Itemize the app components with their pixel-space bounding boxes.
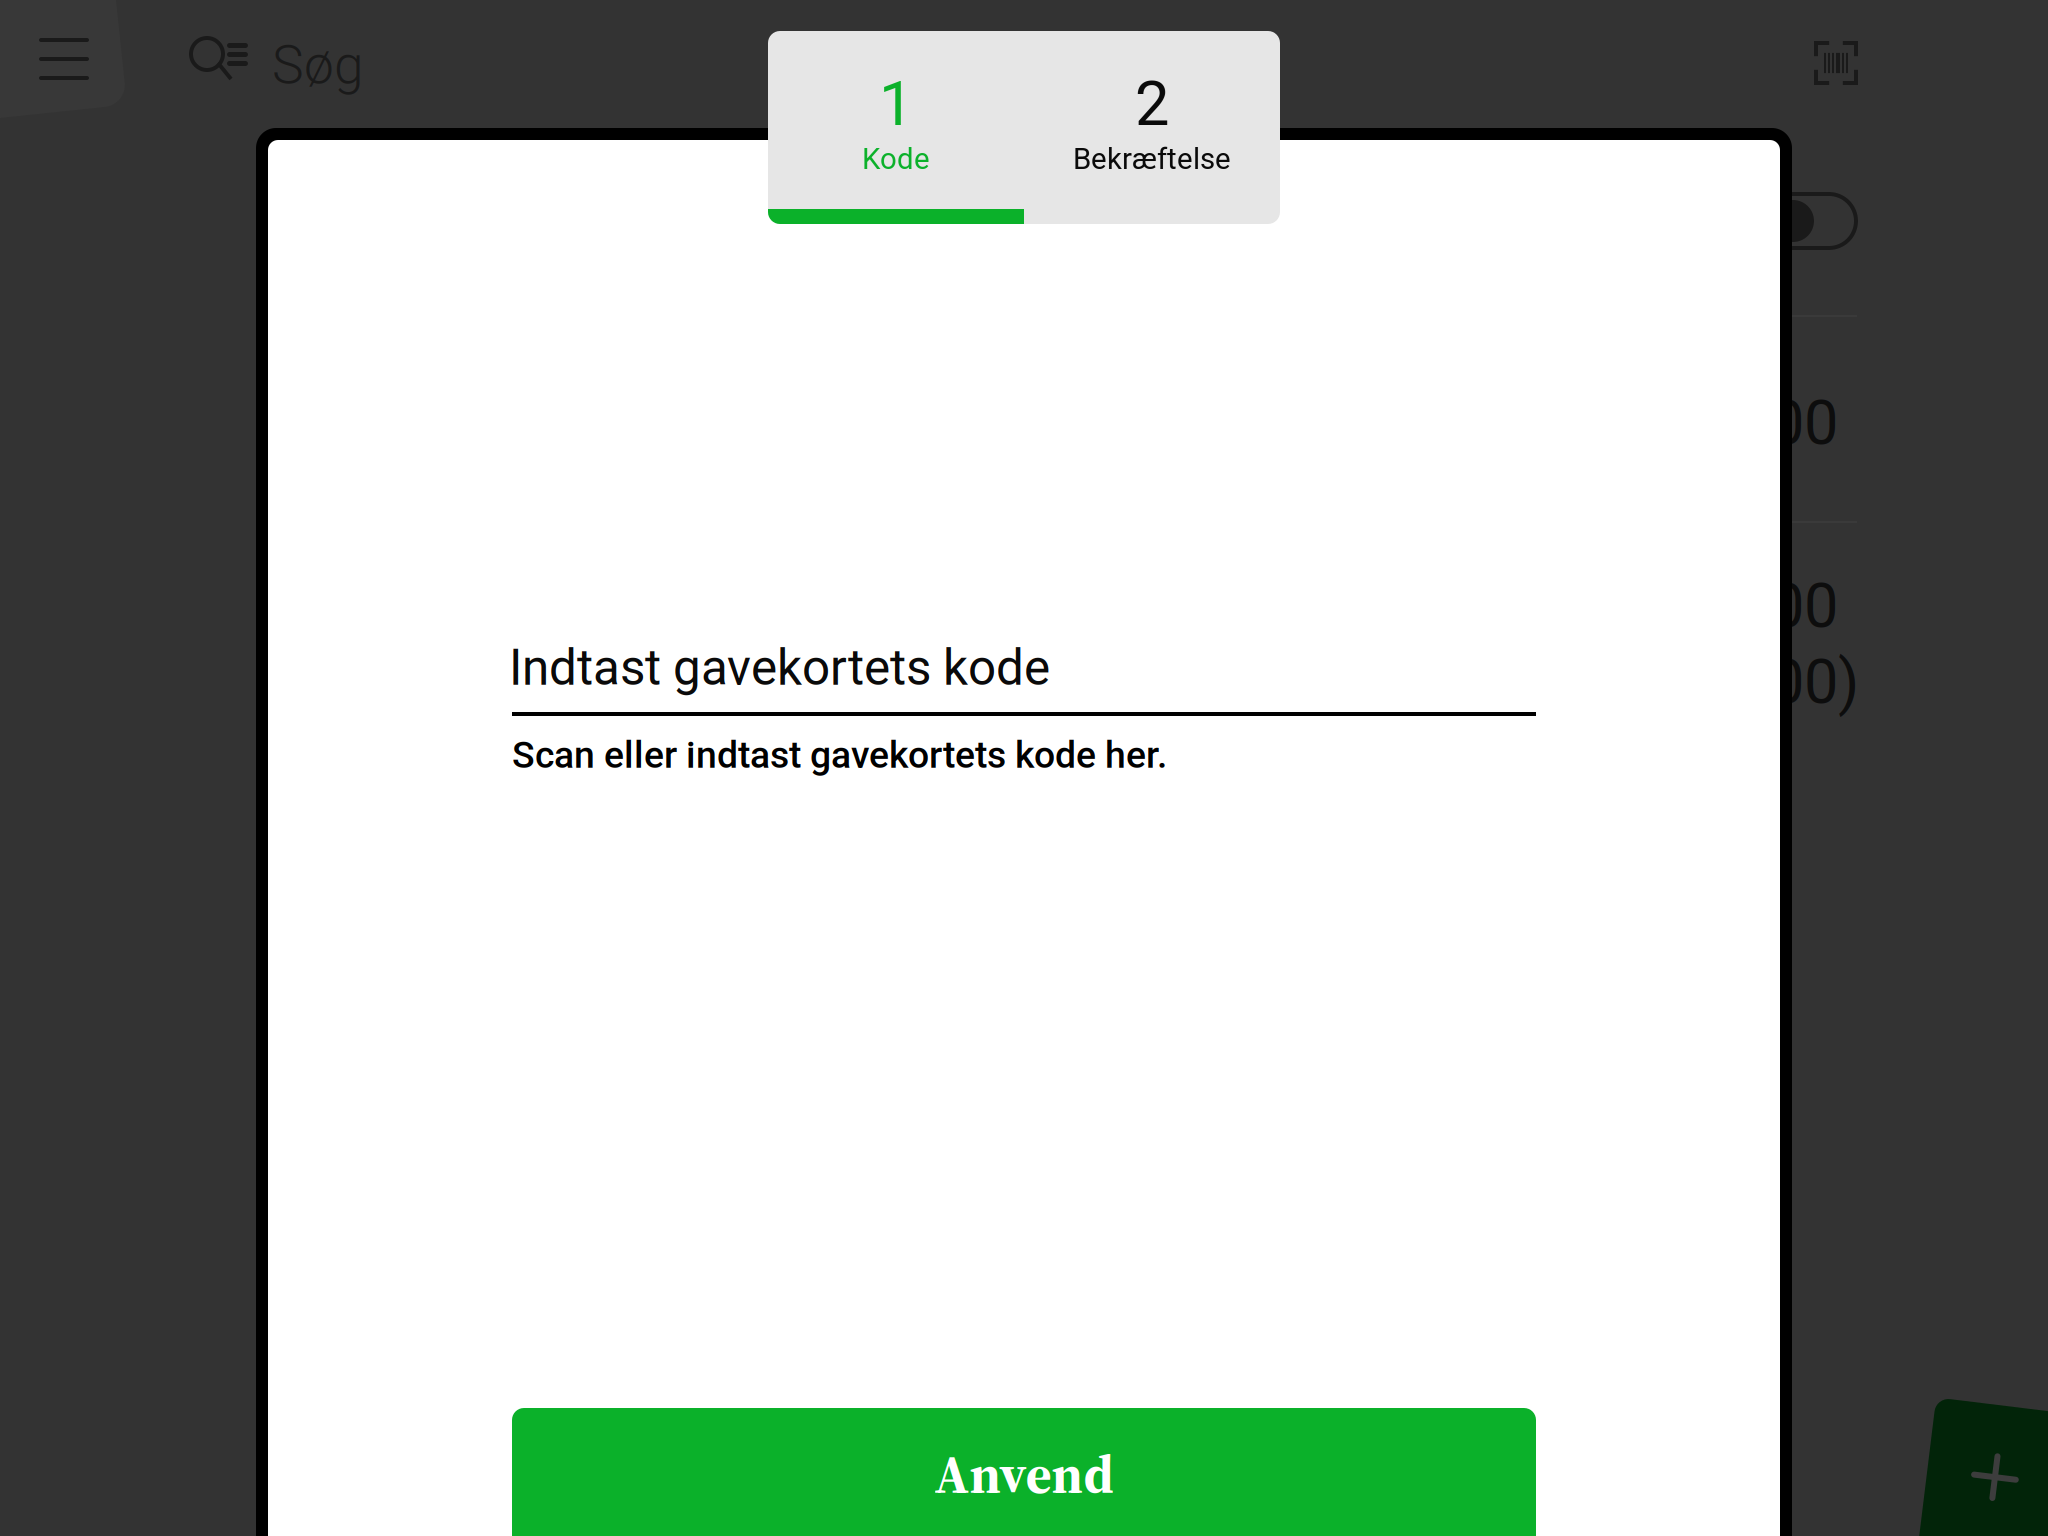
staticText: Indtast gavekortets kode bbox=[509, 639, 1050, 697]
button[interactable]: Menu bbox=[18, 13, 110, 105]
staticText: 00 bbox=[1770, 387, 1838, 459]
button[interactable]: 2 bbox=[1024, 31, 1280, 224]
staticText: Bekræftelse bbox=[1073, 142, 1231, 176]
staticText: 1 bbox=[879, 68, 913, 140]
staticText: 00 bbox=[1770, 570, 1838, 642]
staticText: 2 bbox=[1135, 68, 1169, 140]
button[interactable]: Scan barcode bbox=[1790, 17, 1882, 109]
staticText: Kode bbox=[862, 142, 930, 176]
button[interactable]: 1 bbox=[768, 31, 1024, 224]
button[interactable]: Anvend bbox=[512, 1408, 1536, 1536]
staticText: Søg bbox=[272, 34, 364, 96]
button[interactable]: Indtast gavekortets kode bbox=[512, 639, 1536, 716]
staticText: Scan eller indtast gavekortets kode her. bbox=[512, 733, 1167, 777]
staticText: Anvend bbox=[934, 1437, 1113, 1510]
staticText: 00) bbox=[1770, 646, 1859, 718]
button[interactable]: Søg bbox=[191, 13, 481, 105]
